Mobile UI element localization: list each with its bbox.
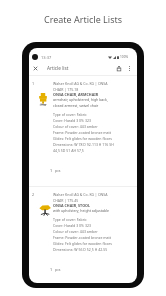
button[interactable]: More options xyxy=(124,61,135,75)
staticText: 1 xyxy=(32,81,37,86)
staticText: pcs xyxy=(55,168,61,173)
staticText: Walser Knoll AG & Co. KG | ONSA CHAIR | … xyxy=(53,192,114,203)
staticText: pcs xyxy=(55,267,61,272)
staticText: Walser Knoll AG & Co. KG | ONSA CHAIR | … xyxy=(53,81,114,92)
button[interactable]: Close xyxy=(29,61,42,75)
button[interactable]: Share xyxy=(113,61,124,75)
staticText: ONSA CHAIR, STOOL xyxy=(53,203,91,208)
button[interactable]: 2 xyxy=(29,187,137,276)
staticText: ONSA CHAIR, ARMCHAIR xyxy=(53,92,99,97)
staticText: 1 xyxy=(50,267,53,272)
staticText: Article list xyxy=(47,65,69,71)
staticText: Type of cover: Fabric Cover: Harald 3 0%… xyxy=(53,112,114,153)
staticText: 100% xyxy=(120,55,129,59)
staticText: 1 xyxy=(50,168,53,173)
staticText: 2 xyxy=(32,192,37,197)
staticText: Create Article Lists xyxy=(44,13,123,25)
staticText: 13:37 xyxy=(41,55,52,60)
staticText: with upholstery, height adjustable xyxy=(53,208,109,213)
staticText: armchair, upholstered, high back, closed… xyxy=(53,97,114,108)
staticText: Type of cover: Fabric Cover: Harald 3 0%… xyxy=(53,217,112,252)
button[interactable]: 1 xyxy=(29,76,137,186)
